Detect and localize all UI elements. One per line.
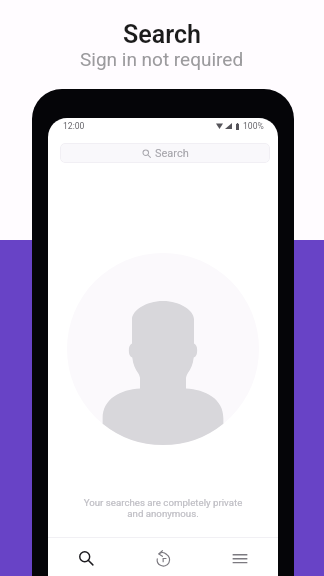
staticText: Sign in not required [80,48,244,70]
button[interactable]: Search [48,538,124,576]
button[interactable]: Search [60,143,270,163]
button[interactable]: Menu [201,538,278,576]
staticText: Search [123,20,201,49]
staticText: 12:00 [63,121,85,131]
staticText: Search [155,147,189,160]
staticText: 100% [243,121,264,131]
button[interactable]: History [124,538,201,576]
staticText: Your searches are completely private and… [48,497,278,519]
